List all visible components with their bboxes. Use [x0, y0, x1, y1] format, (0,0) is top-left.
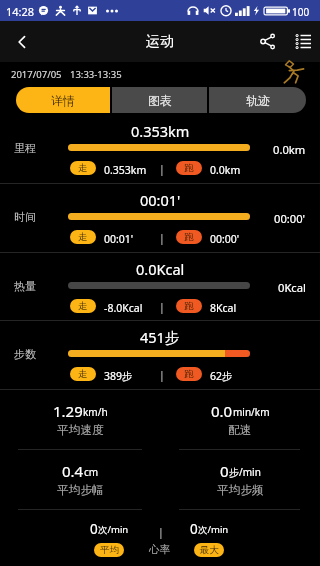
button[interactable]: 平均	[94, 543, 124, 557]
staticText: 451步	[140, 327, 180, 347]
staticText: 最大	[200, 544, 219, 556]
staticText: 热量	[14, 279, 36, 293]
staticText: 里程	[14, 141, 36, 155]
button[interactable]: Share	[250, 21, 284, 62]
staticText: 00:01'	[140, 190, 181, 210]
staticText: 0	[220, 461, 229, 481]
staticText: -8.0Kcal	[104, 301, 143, 315]
staticText: 配速	[228, 423, 252, 438]
staticText: 389步	[104, 369, 133, 383]
staticText: |	[159, 162, 165, 176]
staticText: 心率	[149, 543, 170, 556]
button[interactable]: 详情	[16, 87, 110, 113]
staticText: 走	[78, 300, 88, 312]
staticText: km/h	[83, 405, 108, 419]
staticText: 0.0km	[210, 163, 241, 177]
staticText: 图表	[148, 93, 172, 108]
staticText: 平均速度	[57, 423, 104, 438]
staticText: 步/min	[229, 465, 261, 479]
staticText: 62步	[210, 369, 233, 383]
staticText: 跑	[184, 231, 194, 243]
staticText: 0	[190, 520, 198, 538]
staticText: 平均步频	[217, 483, 264, 498]
button[interactable]: 最大	[194, 543, 224, 557]
staticText: 轨迹	[246, 93, 270, 108]
staticText: 14:28	[6, 4, 35, 19]
staticText: min/km	[233, 405, 270, 419]
staticText: |	[158, 525, 164, 539]
button[interactable]: 图表	[112, 87, 207, 113]
staticText: 0.4	[62, 461, 84, 481]
button[interactable]: List	[286, 21, 320, 62]
staticText: 0.353km	[131, 121, 190, 141]
staticText: 平均	[100, 544, 119, 556]
staticText: 0.0	[211, 401, 233, 421]
staticText: 运动	[146, 33, 174, 51]
button[interactable]: Back	[0, 21, 44, 62]
staticText: 0Kcal	[278, 280, 306, 295]
staticText: 详情	[51, 93, 75, 108]
staticText: 00:00'	[274, 211, 306, 226]
staticText: 2017/07/05	[11, 68, 62, 81]
button[interactable]: 轨迹	[209, 87, 306, 113]
staticText: 13:33-13:35	[70, 68, 122, 81]
staticText: 走	[78, 231, 88, 243]
staticText: 次/min	[198, 523, 229, 536]
staticText: 走	[78, 162, 88, 174]
staticText: 时间	[14, 210, 36, 224]
staticText: 1.29	[53, 401, 83, 421]
staticText: |	[159, 231, 165, 245]
staticText: 跑	[184, 300, 194, 312]
staticText: 走	[78, 368, 88, 380]
staticText: 00:01'	[104, 232, 134, 246]
staticText: 100	[292, 5, 310, 19]
staticText: cm	[84, 465, 99, 479]
staticText: 0.0Kcal	[136, 259, 185, 279]
staticText: 跑	[184, 162, 194, 174]
staticText: 次/min	[98, 523, 129, 536]
staticText: 跑	[184, 368, 194, 380]
staticText: 0	[90, 520, 98, 538]
staticText: 0.0km	[273, 142, 306, 157]
staticText: 0.353km	[104, 163, 147, 177]
staticText: 步数	[14, 347, 36, 361]
staticText: |	[159, 300, 165, 314]
staticText: 00:00'	[210, 232, 240, 246]
staticText: |	[159, 368, 165, 382]
staticText: 平均步幅	[57, 483, 104, 498]
staticText: 8Kcal	[210, 301, 237, 315]
